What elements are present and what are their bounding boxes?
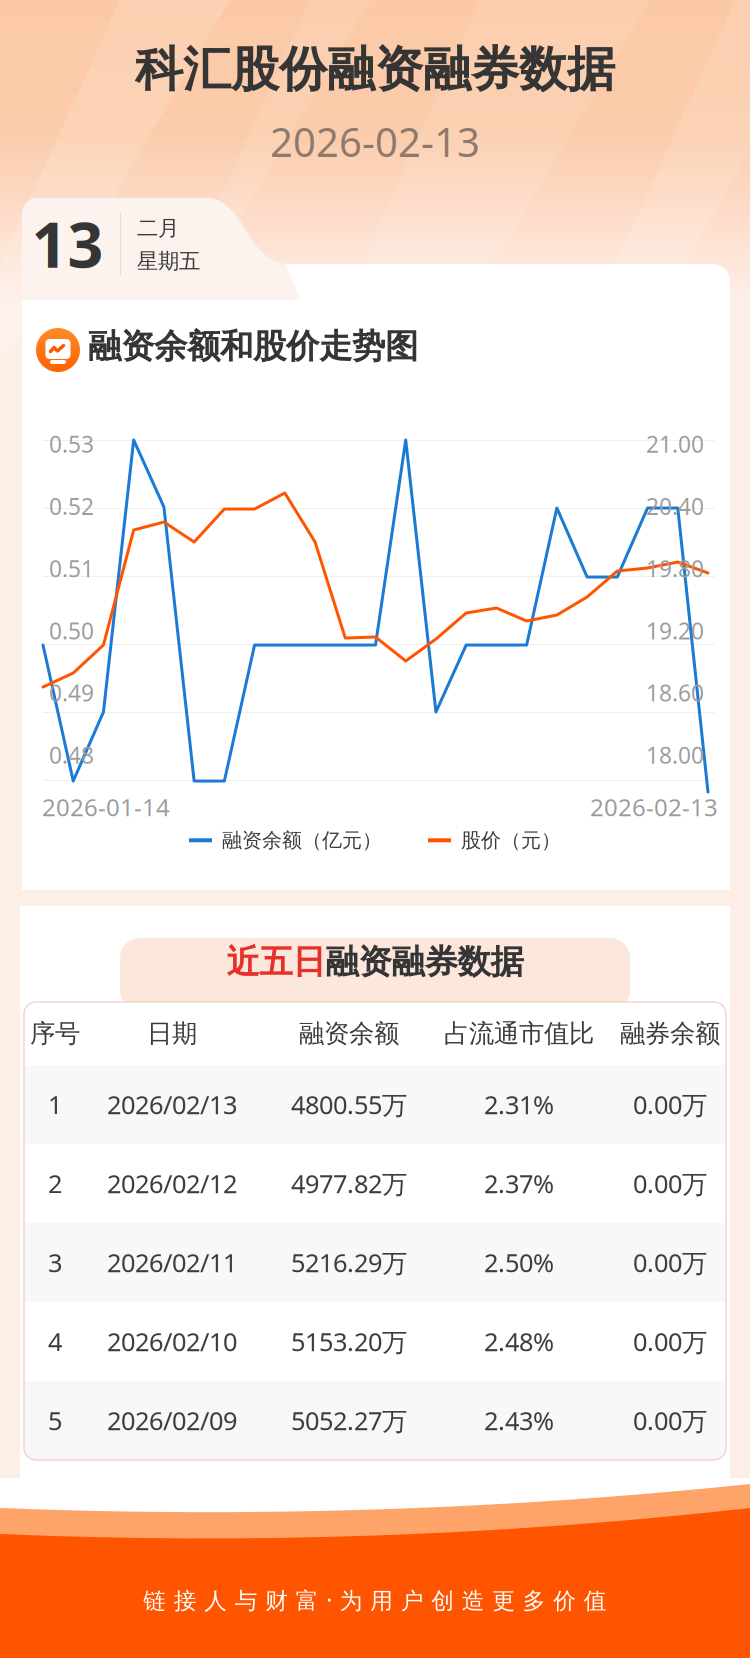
staticText: 19.80: [646, 553, 704, 583]
staticText: 21.00: [646, 429, 704, 459]
staticText: 链接人与财富·为用户创造更多价值: [143, 1585, 607, 1615]
staticText: 0.00万: [633, 1088, 707, 1121]
staticText: 0.52: [49, 491, 94, 521]
staticText: 0.48: [49, 740, 94, 770]
staticText: 5216.29万: [291, 1246, 407, 1279]
staticText: 19.20: [646, 615, 704, 646]
staticText: 2.48%: [484, 1325, 554, 1358]
staticText: 近五日: [226, 941, 325, 982]
staticText: 0.51: [49, 553, 94, 583]
staticText: 20.40: [646, 491, 704, 521]
staticText: 13: [31, 202, 103, 285]
staticText: 2026-02-13: [270, 115, 480, 168]
staticText: 2026-01-14: [42, 791, 170, 823]
staticText: 融资余额（亿元）: [222, 828, 382, 853]
staticText: 占流通市值比: [444, 1018, 594, 1049]
staticText: 0.00万: [633, 1167, 707, 1200]
staticText: 0.49: [49, 678, 94, 708]
staticText: 2026/02/10: [107, 1325, 237, 1358]
staticText: 2.37%: [484, 1167, 554, 1200]
staticText: 0.53: [49, 429, 94, 459]
staticText: 融资融券数据: [325, 941, 523, 982]
staticText: 2026-02-13: [590, 791, 718, 823]
staticText: 2026/02/09: [107, 1404, 237, 1437]
staticText: 0.00万: [633, 1325, 707, 1358]
staticText: 股价（元）: [461, 828, 561, 853]
staticText: 日期: [147, 1018, 197, 1049]
staticText: 星期五: [137, 248, 200, 274]
staticText: 5: [48, 1404, 62, 1437]
staticText: 4977.82万: [291, 1167, 407, 1200]
staticText: 18.60: [646, 678, 704, 708]
staticText: 2: [48, 1167, 62, 1200]
staticText: 2026/02/11: [107, 1246, 237, 1279]
staticText: 4800.55万: [291, 1088, 407, 1121]
staticText: 2.43%: [484, 1404, 554, 1437]
staticText: 2026/02/13: [107, 1088, 237, 1121]
staticText: 18.00: [646, 740, 704, 770]
staticText: 5052.27万: [291, 1404, 407, 1437]
staticText: 0.50: [49, 615, 94, 646]
staticText: 2.50%: [484, 1246, 554, 1279]
staticText: 5153.20万: [291, 1325, 407, 1358]
staticText: 1: [48, 1088, 62, 1121]
staticText: 科汇股份融资融券数据: [135, 40, 615, 99]
staticText: 融券余额: [620, 1018, 720, 1049]
staticText: 融资余额: [299, 1018, 399, 1049]
staticText: 二月: [137, 215, 179, 241]
staticText: 0.00万: [633, 1246, 707, 1279]
staticText: 4: [48, 1325, 62, 1358]
staticText: 3: [48, 1246, 62, 1279]
staticText: 0.00万: [633, 1404, 707, 1437]
staticText: 序号: [30, 1018, 80, 1049]
staticText: 2.31%: [484, 1088, 554, 1121]
staticText: 2026/02/12: [107, 1167, 237, 1200]
staticText: 融资余额和股价走势图: [88, 326, 418, 367]
